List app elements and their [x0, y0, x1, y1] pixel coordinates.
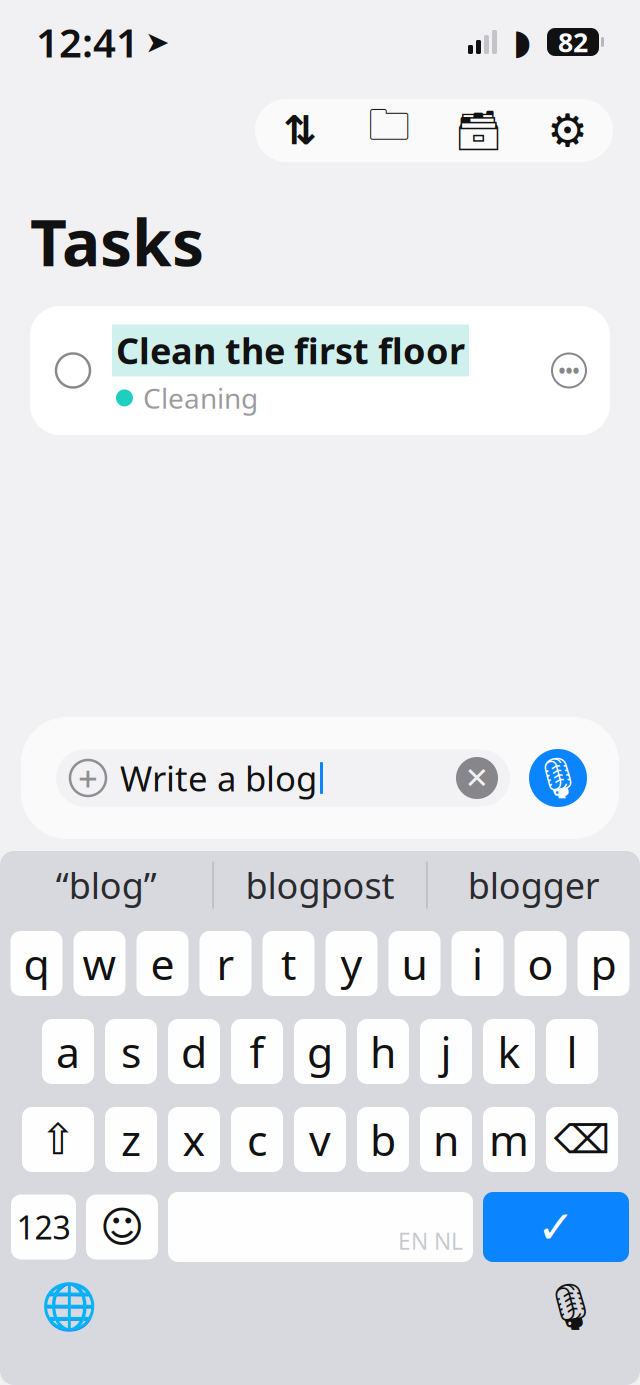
staticText: 🎙: [532, 755, 583, 801]
button[interactable]: f: [231, 1019, 283, 1084]
staticText: ⌫: [553, 1117, 610, 1162]
button[interactable]: blogger: [428, 854, 640, 916]
button[interactable]: x: [168, 1107, 220, 1172]
staticText: ⇅: [283, 108, 317, 153]
button[interactable]: s: [105, 1019, 157, 1084]
button[interactable]: Sort: [256, 99, 345, 162]
staticText: ◗: [513, 22, 531, 62]
staticText: ⚙: [547, 105, 588, 156]
button[interactable]: Dictation: [532, 1272, 610, 1342]
staticText: Cleaning: [143, 379, 258, 416]
button[interactable]: z: [105, 1107, 157, 1172]
button[interactable]: i: [451, 931, 503, 996]
button[interactable]: Add detail: [70, 755, 106, 801]
button[interactable]: Next keyboard: [30, 1272, 108, 1342]
staticText: y: [340, 935, 362, 992]
button[interactable]: blogpost: [214, 854, 426, 916]
button[interactable]: space: [168, 1192, 473, 1262]
staticText: Clean the first floor: [116, 326, 465, 374]
button[interactable]: u: [388, 931, 440, 996]
staticText: d: [181, 1023, 207, 1080]
staticText: blogpost: [245, 861, 394, 909]
staticText: “blog”: [56, 861, 157, 909]
staticText: 🌐: [41, 1281, 97, 1333]
staticText: ⇧: [40, 1115, 76, 1164]
staticText: Write a blog: [120, 755, 317, 801]
staticText: c: [247, 1111, 267, 1168]
staticText: b: [370, 1111, 396, 1168]
button[interactable]: g: [294, 1019, 346, 1084]
staticText: n: [433, 1111, 459, 1168]
staticText: ☺: [100, 1203, 144, 1251]
button[interactable]: j: [420, 1019, 472, 1084]
staticText: 82: [558, 24, 588, 60]
staticText: blogger: [468, 861, 600, 909]
staticText: +: [78, 755, 98, 801]
staticText: s: [121, 1023, 141, 1080]
button[interactable]: q: [10, 931, 62, 996]
staticText: Tasks: [30, 199, 204, 284]
staticText: u: [401, 935, 427, 992]
button[interactable]: Done: [483, 1192, 629, 1262]
staticText: l: [566, 1023, 577, 1080]
button[interactable]: Shift: [22, 1107, 94, 1172]
button[interactable]: o: [514, 931, 566, 996]
button[interactable]: w: [73, 931, 125, 996]
button[interactable]: Clean the first floor: [30, 306, 610, 435]
button[interactable]: a: [42, 1019, 94, 1084]
staticText: ✓: [537, 1201, 575, 1253]
staticText: p: [590, 935, 616, 992]
button[interactable]: Emoji: [86, 1194, 158, 1259]
button[interactable]: m: [483, 1107, 535, 1172]
staticText: 123: [16, 1206, 70, 1248]
button[interactable]: “blog”: [0, 854, 212, 916]
staticText: o: [527, 935, 553, 992]
button[interactable]: r: [199, 931, 251, 996]
button[interactable]: y: [325, 931, 377, 996]
staticText: 🗀: [368, 95, 411, 166]
button[interactable]: v: [294, 1107, 346, 1172]
staticText: ➤: [145, 25, 170, 59]
staticText: r: [216, 935, 234, 992]
staticText: w: [82, 935, 116, 992]
button[interactable]: t: [262, 931, 314, 996]
button[interactable]: c: [231, 1107, 283, 1172]
button[interactable]: Voice input: [529, 749, 587, 807]
staticText: x: [182, 1111, 205, 1168]
staticText: z: [121, 1111, 141, 1168]
staticText: g: [307, 1023, 333, 1080]
button[interactable]: Archive: [434, 99, 523, 162]
staticText: a: [56, 1023, 80, 1080]
button[interactable]: Folders: [345, 99, 434, 162]
staticText: 🎙: [542, 1281, 600, 1333]
button[interactable]: h: [357, 1019, 409, 1084]
staticText: e: [150, 935, 174, 992]
staticText: v: [309, 1111, 331, 1168]
button[interactable]: n: [420, 1107, 472, 1172]
button[interactable]: e: [136, 931, 188, 996]
button[interactable]: 123: [11, 1194, 76, 1259]
staticText: t: [281, 935, 296, 992]
staticText: j: [440, 1023, 451, 1080]
button[interactable]: l: [546, 1019, 598, 1084]
staticText: q: [23, 935, 49, 992]
button[interactable]: Settings: [523, 99, 612, 162]
button[interactable]: k: [483, 1019, 535, 1084]
staticText: ✕: [464, 761, 489, 795]
staticText: i: [472, 935, 483, 992]
button[interactable]: Delete: [546, 1107, 618, 1172]
staticText: 🗃: [454, 108, 503, 153]
button[interactable]: d: [168, 1019, 220, 1084]
button[interactable]: b: [357, 1107, 409, 1172]
staticText: m: [489, 1111, 529, 1168]
staticText: f: [249, 1023, 264, 1080]
staticText: •••: [558, 358, 579, 383]
button[interactable]: Clear text: [456, 757, 498, 799]
staticText: k: [497, 1023, 520, 1080]
staticText: EN NL: [398, 1226, 463, 1256]
staticText: 12:41: [36, 15, 139, 68]
button[interactable]: p: [577, 931, 629, 996]
staticText: h: [370, 1023, 396, 1080]
